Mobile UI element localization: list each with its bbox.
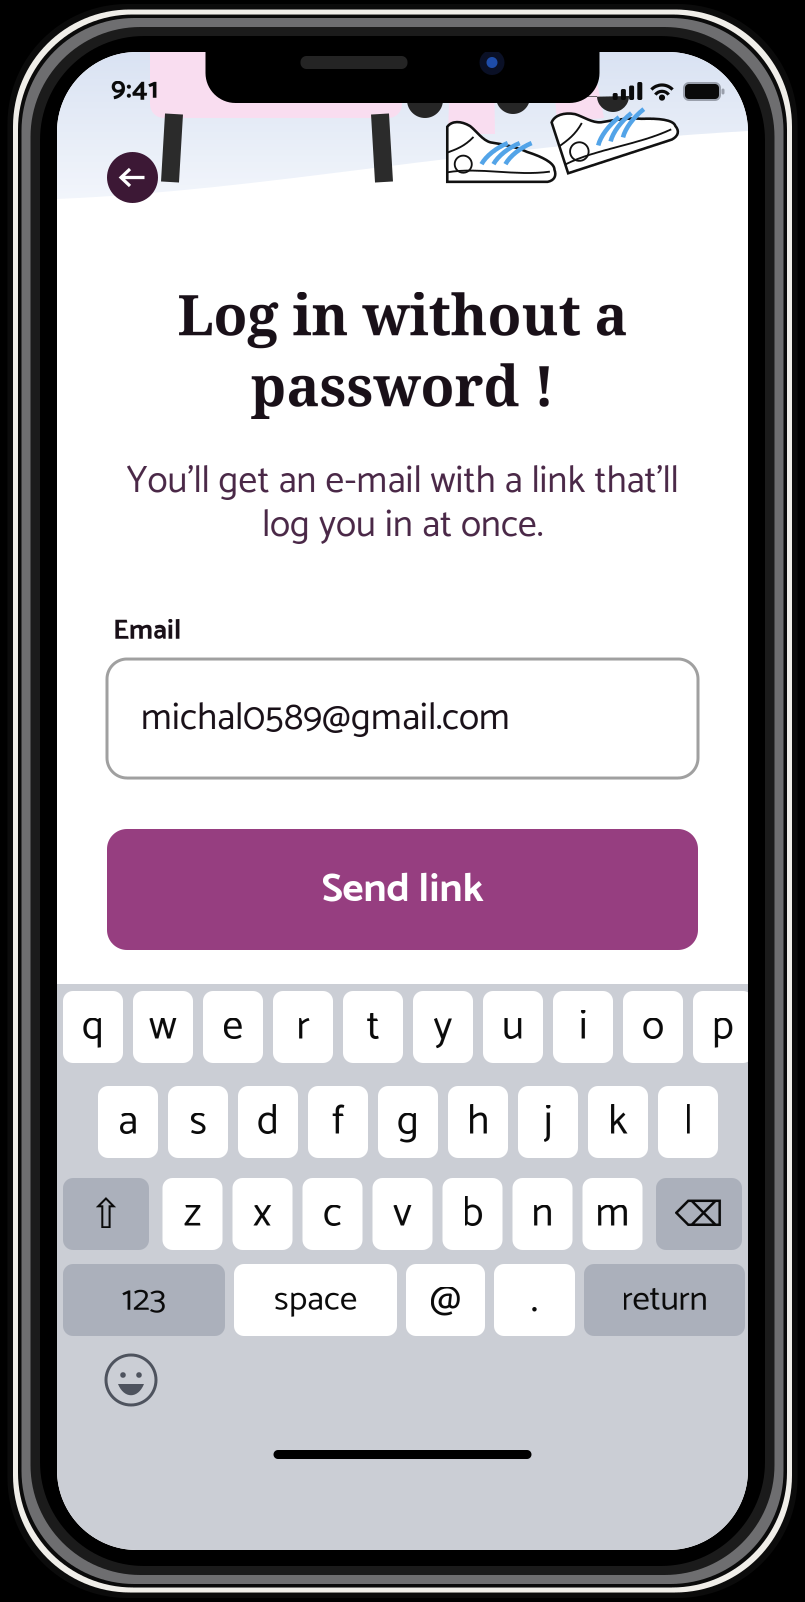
staticText: j: [543, 1088, 552, 1156]
staticText: log you in at once.: [262, 495, 543, 556]
staticText: Email: [113, 608, 181, 654]
staticText: b: [461, 1180, 483, 1248]
button[interactable]: h: [448, 1086, 508, 1158]
staticText: g: [397, 1088, 419, 1156]
staticText: x: [253, 1180, 272, 1248]
button[interactable]: n: [512, 1178, 572, 1250]
staticText: z: [183, 1180, 201, 1248]
button[interactable]: e: [203, 991, 263, 1063]
staticText: c: [323, 1180, 342, 1248]
staticText: d: [257, 1088, 279, 1156]
staticText: space: [274, 1272, 357, 1328]
button[interactable]: a: [98, 1086, 158, 1158]
staticText: r: [296, 993, 309, 1061]
staticText: Send link: [321, 856, 483, 923]
button[interactable]: b: [442, 1178, 502, 1250]
staticText: @: [429, 1266, 461, 1334]
button[interactable]: g: [378, 1086, 438, 1158]
button[interactable]: Emoji keyboard: [105, 1354, 157, 1406]
staticText: k: [608, 1088, 628, 1156]
button[interactable]: u: [483, 991, 543, 1063]
button[interactable]: ⇧: [63, 1178, 149, 1250]
button[interactable]: i: [553, 991, 613, 1063]
button[interactable]: w: [133, 991, 193, 1063]
staticText: y: [433, 993, 452, 1061]
staticText: w: [149, 993, 177, 1061]
button[interactable]: j: [518, 1086, 578, 1158]
button[interactable]: y: [413, 991, 473, 1063]
staticText: p: [712, 993, 734, 1061]
staticText: Log in without a: [177, 276, 627, 351]
staticText: password !: [250, 347, 554, 422]
button[interactable]: l: [658, 1086, 718, 1158]
staticText: f: [332, 1088, 344, 1156]
button[interactable]: o: [623, 991, 683, 1063]
button[interactable]: p: [693, 991, 753, 1063]
button[interactable]: f: [308, 1086, 368, 1158]
button[interactable]: r: [273, 991, 333, 1063]
button[interactable]: 123: [63, 1264, 225, 1336]
button[interactable]: t: [343, 991, 403, 1063]
button[interactable]: z: [162, 1178, 222, 1250]
button[interactable]: v: [372, 1178, 432, 1250]
staticText: q: [82, 993, 104, 1061]
button[interactable]: m: [582, 1178, 642, 1250]
button[interactable]: .: [494, 1264, 575, 1336]
staticText: o: [642, 993, 664, 1061]
staticText: l: [683, 1088, 692, 1156]
button[interactable]: ⌫: [656, 1178, 742, 1250]
button[interactable]: d: [238, 1086, 298, 1158]
staticText: You’ll get an e-mail with a link that’ll: [126, 451, 678, 512]
button[interactable]: @: [406, 1264, 485, 1336]
button[interactable]: q: [63, 991, 123, 1063]
staticText: ⇧: [88, 1190, 123, 1238]
button[interactable]: space: [234, 1264, 397, 1336]
button[interactable]: x: [232, 1178, 292, 1250]
button[interactable]: return: [584, 1264, 745, 1336]
staticText: i: [579, 993, 587, 1061]
staticText: e: [222, 993, 243, 1061]
staticText: a: [118, 1088, 138, 1156]
staticText: n: [531, 1180, 553, 1248]
button[interactable]: c: [302, 1178, 362, 1250]
staticText: v: [393, 1180, 412, 1248]
staticText: ⌫: [674, 1194, 723, 1234]
button[interactable]: s: [168, 1086, 228, 1158]
staticText: u: [502, 993, 524, 1061]
staticText: s: [189, 1088, 206, 1156]
staticText: 123: [122, 1272, 166, 1328]
staticText: m: [595, 1180, 629, 1248]
staticText: michal0589@gmail.com: [141, 688, 510, 749]
staticText: 9:41: [111, 67, 158, 113]
staticText: return: [621, 1272, 707, 1328]
staticText: t: [366, 993, 379, 1061]
staticText: h: [467, 1088, 489, 1156]
staticText: .: [531, 1266, 538, 1334]
button[interactable]: Back: [107, 152, 158, 203]
button[interactable]: k: [588, 1086, 648, 1158]
button[interactable]: Send link: [107, 829, 698, 950]
